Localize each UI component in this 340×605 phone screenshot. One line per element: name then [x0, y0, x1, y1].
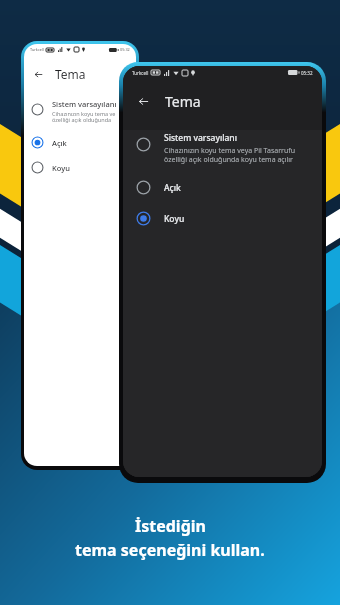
- button[interactable]: Koyu: [123, 209, 322, 228]
- staticText: 05:32: [120, 47, 130, 52]
- staticText: Koyu: [164, 213, 185, 225]
- button[interactable]: Back: [132, 90, 154, 112]
- staticText: Açık: [52, 138, 67, 148]
- staticText: Cihazınızın koyu tema ve özelliği açık o…: [52, 110, 116, 124]
- staticText: Turkcell: [132, 70, 149, 76]
- button[interactable]: Koyu: [24, 159, 136, 176]
- staticText: Turkcell: [30, 47, 44, 52]
- button[interactable]: Sistem varsayılanı: [123, 130, 322, 166]
- button[interactable]: Back: [29, 65, 47, 83]
- staticText: Koyu: [52, 163, 70, 173]
- staticText: Cihazınızın koyu tema veya Pil Tasarrufu…: [164, 146, 295, 164]
- button[interactable]: Sistem varsayılanı: [24, 97, 136, 126]
- staticText: Tema: [165, 92, 201, 111]
- button[interactable]: Açık: [24, 134, 136, 151]
- staticText: Açık: [164, 182, 181, 194]
- staticText: tema seçeneğini kullan.: [75, 539, 265, 561]
- button[interactable]: Açık: [123, 178, 322, 197]
- staticText: İstediğin: [135, 515, 206, 537]
- staticText: Sistem varsayılanı: [52, 99, 117, 109]
- staticText: 05:32: [301, 70, 313, 76]
- staticText: Sistem varsayılanı: [164, 132, 237, 144]
- staticText: Tema: [55, 66, 86, 82]
